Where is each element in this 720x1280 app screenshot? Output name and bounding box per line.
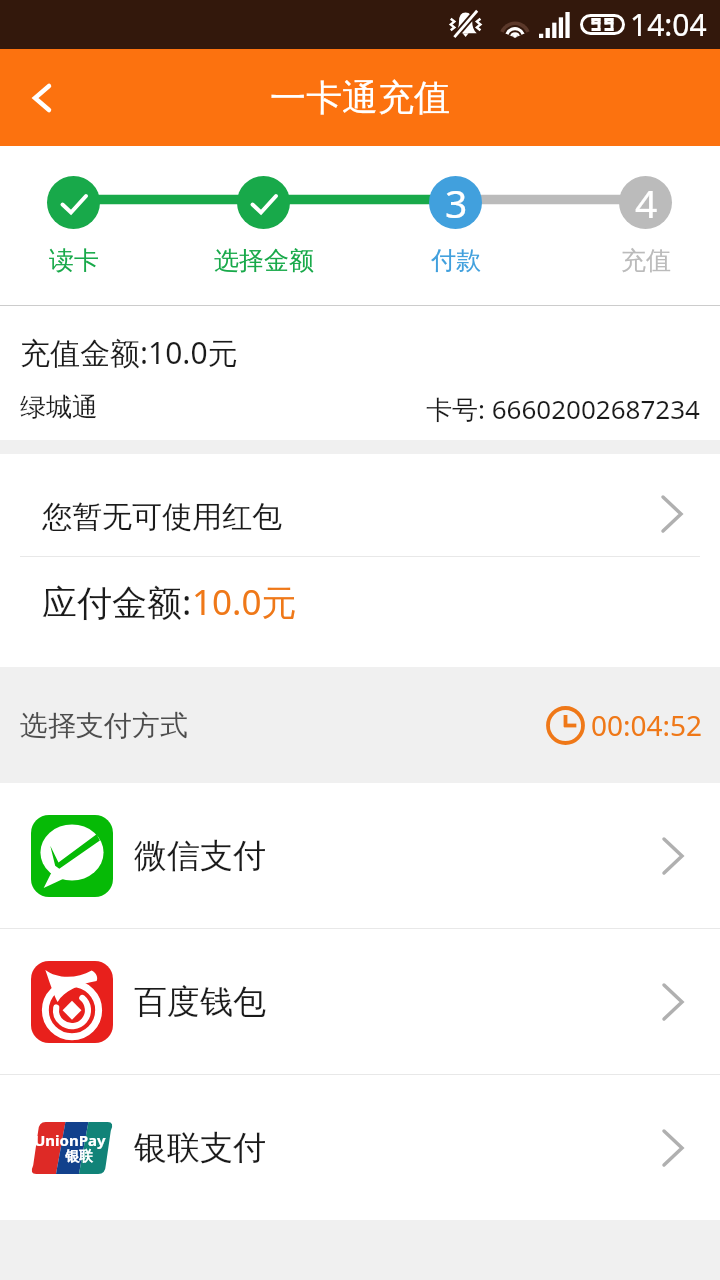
button[interactable]: 您暂无可使用红包 [0, 454, 720, 556]
staticText: 充值金额:10.0元 [20, 332, 238, 373]
staticText: 10.0元 [192, 578, 297, 626]
staticText: 选择金额 [214, 245, 314, 276]
staticText: 充值 [621, 245, 671, 276]
button[interactable]: 百度钱包 [0, 929, 720, 1074]
staticText: 14:04 [630, 4, 707, 45]
button[interactable]: UnionPay [0, 1075, 720, 1220]
staticText: 应付金额: [42, 578, 192, 626]
staticText: 读卡 [49, 245, 99, 276]
staticText: 卡号: 66602002687234 [426, 391, 700, 427]
staticText: 4 [635, 176, 658, 229]
staticText: 您暂无可使用红包 [42, 498, 282, 536]
staticText: 选择支付方式 [20, 708, 188, 743]
button[interactable]: 微信支付 [0, 783, 720, 928]
staticText: 微信支付 [134, 835, 266, 877]
staticText: 银联支付 [134, 1127, 266, 1169]
staticText: 绿城通 [20, 391, 98, 424]
staticText: 00:04:52 [591, 706, 703, 744]
staticText: 百度钱包 [134, 981, 266, 1023]
staticText: UnionPay [34, 1130, 106, 1150]
staticText: 3 [445, 176, 468, 229]
button[interactable]: Back [0, 56, 84, 140]
staticText: 付款 [431, 245, 481, 276]
staticText: 银联 [65, 1148, 93, 1166]
staticText: 一卡通充值 [270, 75, 450, 120]
